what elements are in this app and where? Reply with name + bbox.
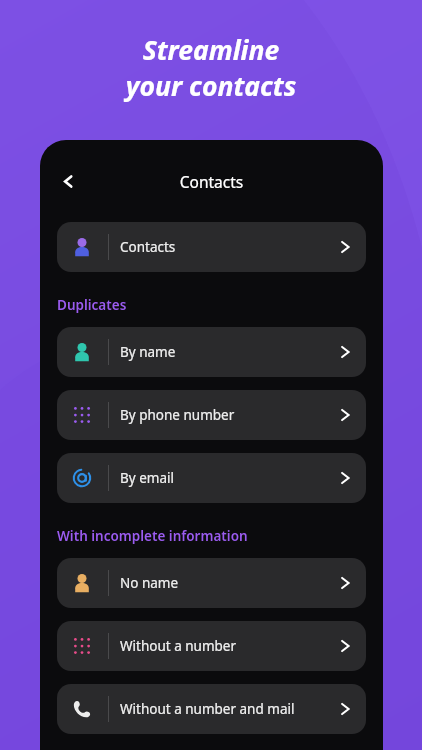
staticText: Streamline your contacts: [24, 32, 398, 104]
button[interactable]: Back: [48, 161, 88, 201]
staticText: By name: [120, 343, 336, 361]
button[interactable]: By phone number: [57, 390, 366, 440]
button[interactable]: By name: [57, 327, 366, 377]
staticText: Without a number: [120, 637, 336, 655]
button[interactable]: No name: [57, 558, 366, 608]
button[interactable]: Without a number: [57, 621, 366, 671]
staticText: No name: [120, 574, 336, 592]
staticText: By phone number: [120, 406, 336, 424]
staticText: By email: [120, 469, 336, 487]
staticText: Contacts: [120, 238, 336, 256]
button[interactable]: Contacts: [57, 222, 366, 272]
button[interactable]: By email: [57, 453, 366, 503]
staticText: With incomplete information: [57, 527, 248, 545]
staticText: Without a number and mail: [120, 700, 336, 718]
staticText: Duplicates: [57, 296, 127, 314]
staticText: Contacts: [40, 171, 383, 192]
button[interactable]: Without a number and mail: [57, 684, 366, 734]
